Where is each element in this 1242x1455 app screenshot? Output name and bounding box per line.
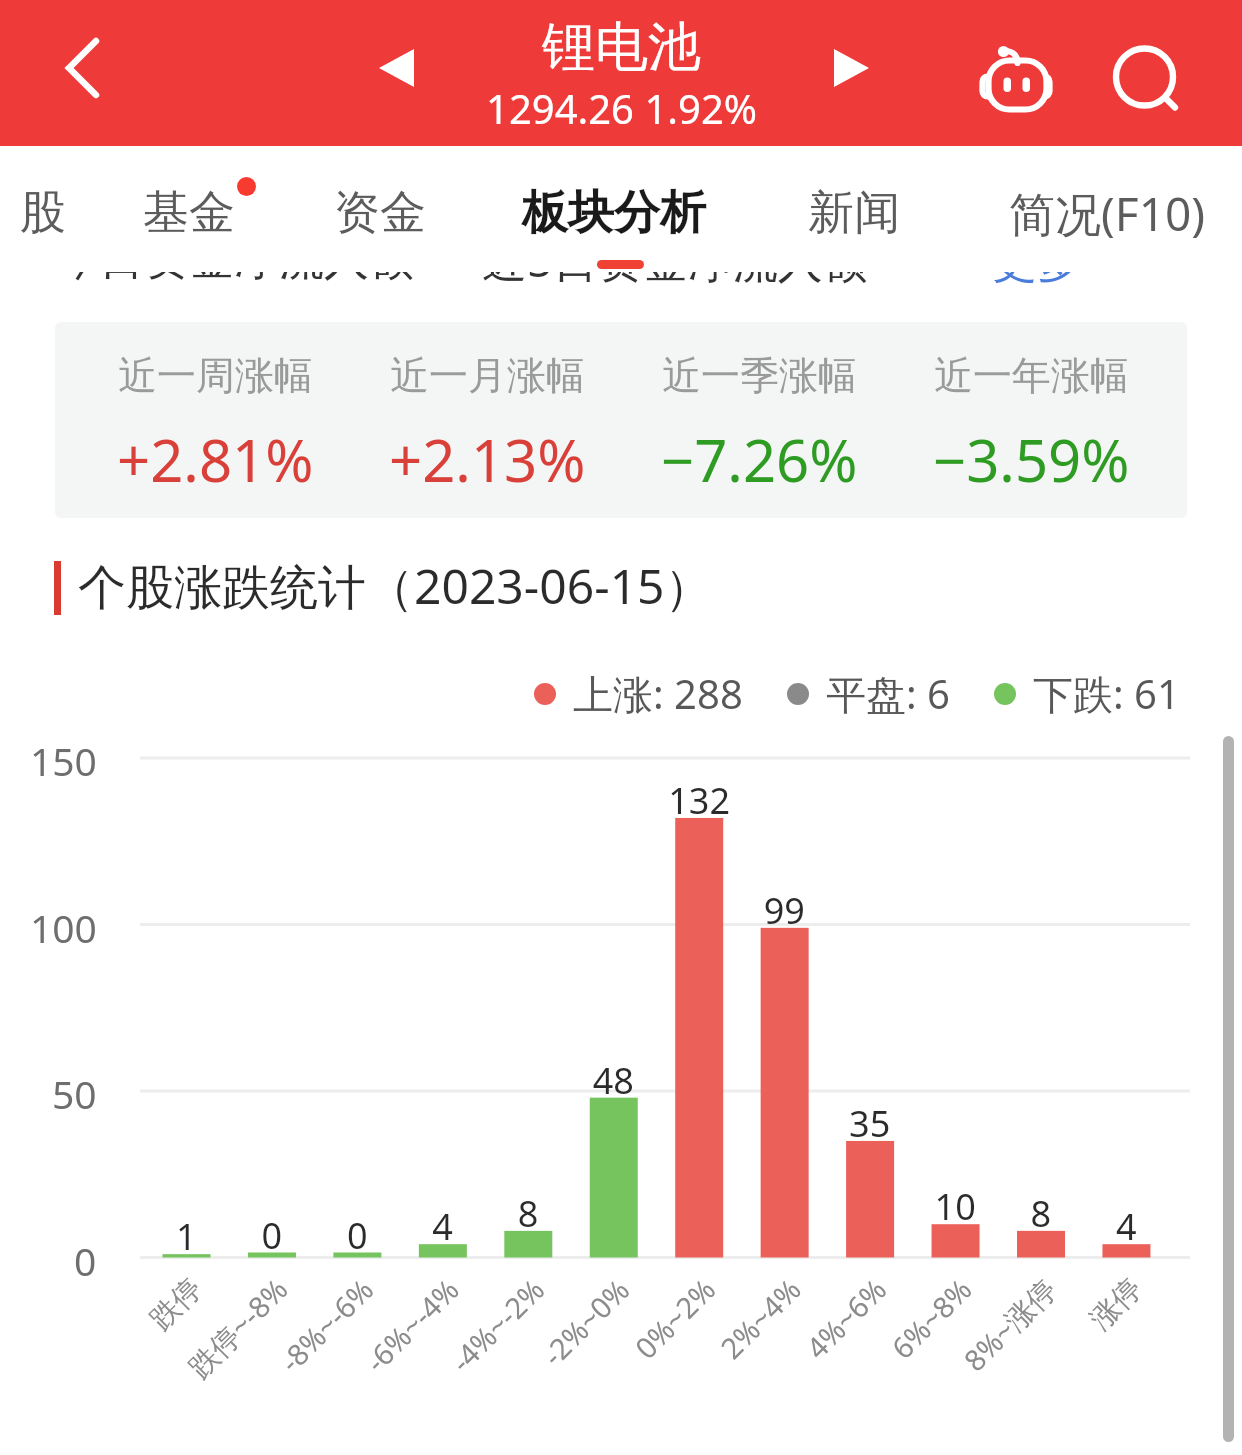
staticText: 资金 xyxy=(334,184,426,242)
button[interactable]: 板块分析 xyxy=(499,146,729,272)
staticText: 近一周涨幅 xyxy=(118,351,313,400)
staticText: −3.59% xyxy=(933,420,1130,499)
staticText: 下跌: 61 xyxy=(1033,666,1180,721)
staticText: 股 xyxy=(20,184,66,242)
staticText: 近一季涨幅 xyxy=(662,351,857,400)
button[interactable]: 资金 xyxy=(312,146,448,272)
staticText: 近一年涨幅 xyxy=(934,351,1129,400)
staticText: 锂电池 xyxy=(542,14,701,81)
button[interactable]: 新闻 xyxy=(786,146,922,272)
staticText: 平盘: 6 xyxy=(826,666,950,721)
staticText: 近一月涨幅 xyxy=(390,351,585,400)
staticText: +2.81% xyxy=(117,420,314,499)
staticText: 简况(F10) xyxy=(1009,182,1206,245)
staticText: 板块分析 xyxy=(522,184,706,242)
button[interactable]: 近一年涨幅 xyxy=(871,322,1191,518)
staticText: +2.13% xyxy=(389,420,586,499)
button[interactable]: 平盘: 6 xyxy=(787,666,950,721)
staticText: 近5日资金净流入额 xyxy=(482,229,868,290)
button[interactable]: 近一月涨幅 xyxy=(327,322,647,518)
staticText: 更多> xyxy=(992,229,1108,290)
button[interactable]: AI assistant xyxy=(980,45,1052,119)
button[interactable]: Back xyxy=(37,23,127,113)
button[interactable]: 股 xyxy=(0,146,111,272)
button[interactable]: Search xyxy=(1108,41,1184,117)
button[interactable]: 近一季涨幅 xyxy=(599,322,919,518)
button[interactable]: 下跌: 61 xyxy=(994,666,1180,721)
button[interactable]: 上涨: 288 xyxy=(534,666,743,721)
button[interactable]: 简况(F10) xyxy=(985,146,1229,272)
staticText: 1294.26 1.92% xyxy=(486,81,757,135)
button[interactable]: Previous sector xyxy=(356,28,436,108)
staticText: −7.26% xyxy=(661,420,858,499)
button[interactable]: Next sector xyxy=(811,28,891,108)
staticText: 今日资金净流入额 xyxy=(54,231,414,288)
staticText: 新闻 xyxy=(808,184,900,242)
staticText: 上涨: 288 xyxy=(573,666,743,721)
staticText: 个股涨跌统计（2023-06-15） xyxy=(78,553,713,619)
button[interactable]: 基金 xyxy=(121,146,257,272)
staticText: 基金 xyxy=(143,184,235,242)
button[interactable]: 近一周涨幅 xyxy=(55,322,375,518)
